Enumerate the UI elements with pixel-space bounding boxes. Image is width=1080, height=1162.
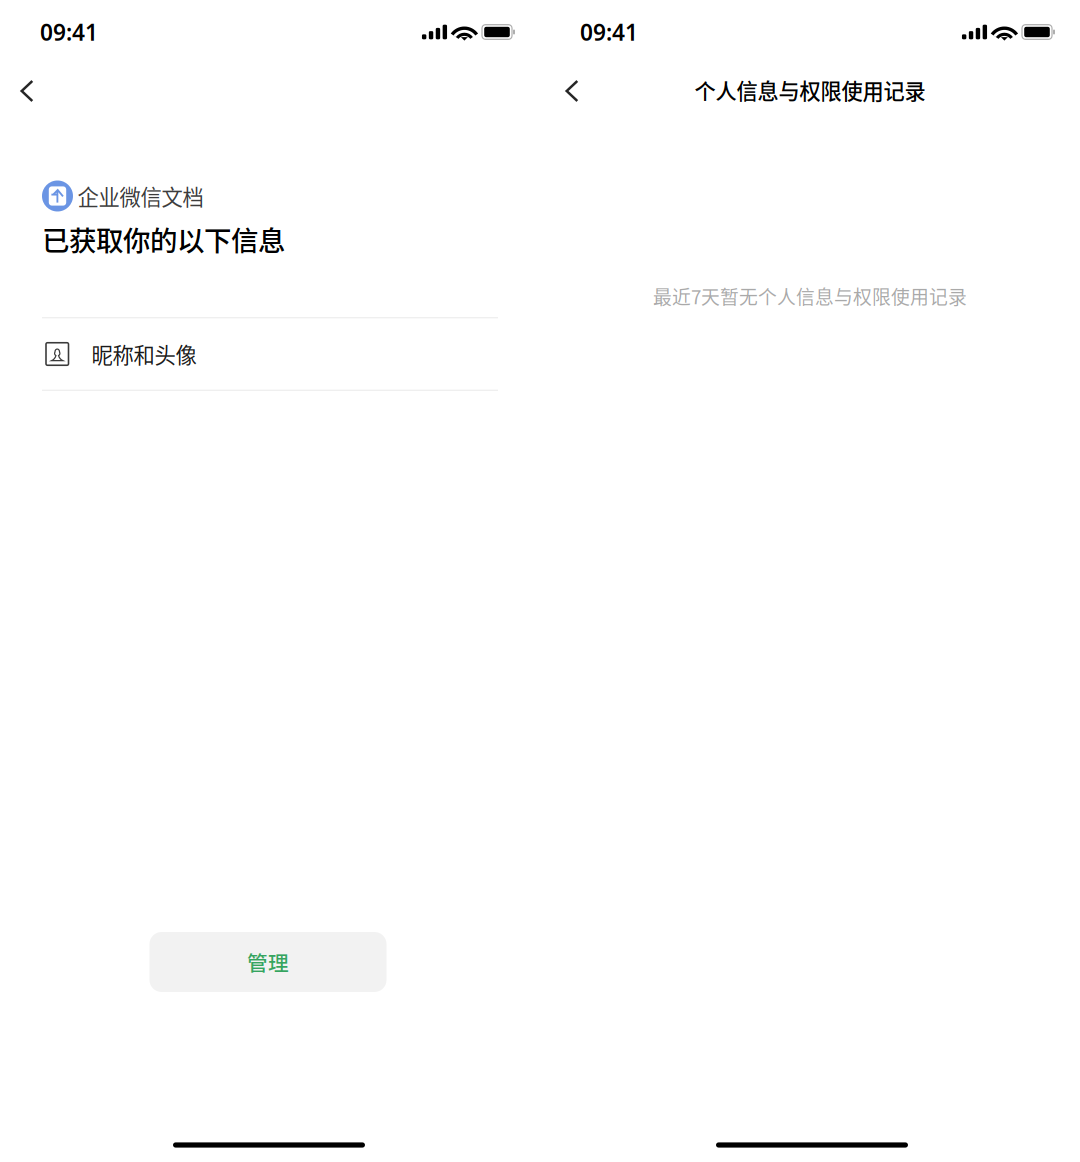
button[interactable]: Back: [545, 67, 599, 115]
staticText: 企业微信文档: [77, 181, 203, 211]
staticText: 个人信息与权限使用记录: [694, 75, 925, 105]
staticText: 09:41: [40, 17, 98, 47]
staticText: 昵称和头像: [91, 339, 196, 369]
staticText: 09:41: [580, 17, 638, 47]
staticText: 已获取你的以下信息: [42, 219, 285, 259]
button[interactable]: Back: [0, 67, 54, 115]
staticText: 最近7天暂无个人信息与权限使用记录: [653, 282, 967, 310]
button[interactable]: 管理: [149, 932, 386, 992]
button[interactable]: 昵称和头像: [42, 318, 498, 390]
staticText: 管理: [247, 947, 289, 977]
